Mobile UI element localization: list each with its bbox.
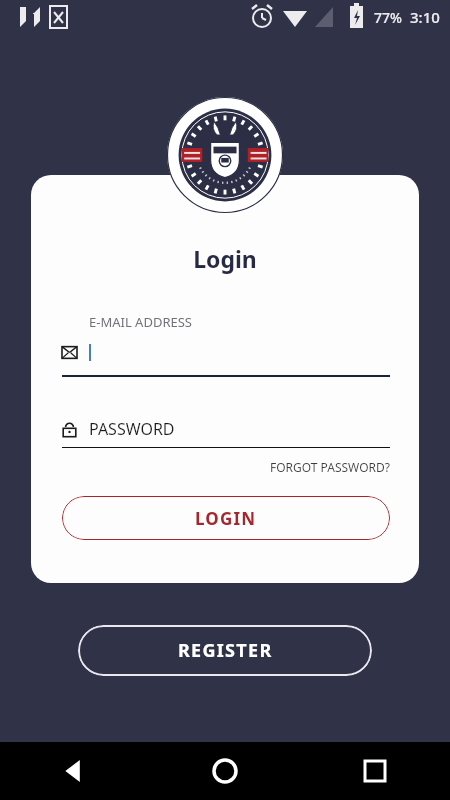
button[interactable]: Recent apps: [300, 742, 450, 800]
staticText: 3:10: [410, 7, 440, 27]
button[interactable]: Back: [0, 742, 150, 800]
staticText: 77%: [374, 8, 402, 27]
button[interactable]: Home: [150, 742, 300, 800]
staticText: PASSWORD: [89, 418, 175, 440]
button[interactable]: LOGIN: [62, 496, 390, 540]
button[interactable]: FORGOT PASSWORD?: [62, 459, 390, 475]
staticText: E-MAIL ADDRESS: [89, 313, 192, 331]
button[interactable]: REGISTER: [78, 625, 372, 676]
staticText: Login: [31, 243, 419, 274]
staticText: REGISTER: [178, 638, 273, 663]
staticText: FORGOT PASSWORD?: [270, 459, 390, 475]
staticText: LOGIN: [195, 507, 257, 530]
